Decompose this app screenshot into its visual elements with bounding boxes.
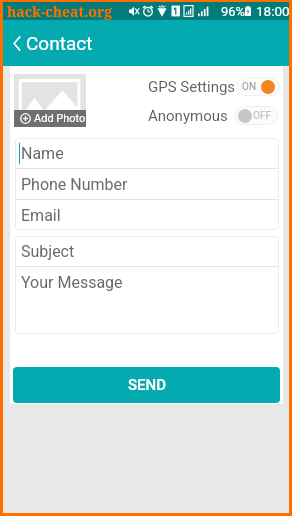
button[interactable]: Anonymous bbox=[148, 106, 228, 125]
staticText: Anonymous bbox=[148, 107, 228, 125]
staticText: SEND bbox=[128, 376, 166, 394]
staticText: Add Photo bbox=[34, 112, 86, 125]
button[interactable]: Add Photo bbox=[14, 74, 86, 127]
staticText: Email bbox=[21, 206, 61, 225]
button[interactable]: GPS Settings bbox=[148, 77, 236, 96]
staticText: 96% bbox=[221, 4, 246, 19]
button[interactable]: Name bbox=[15, 138, 279, 168]
staticText: Phone Number bbox=[21, 175, 128, 194]
other: Battery bbox=[245, 6, 251, 16]
staticText: OFF bbox=[253, 110, 271, 122]
button[interactable]: Back bbox=[3, 20, 103, 66]
button[interactable]: Email bbox=[15, 200, 279, 230]
other: Back bbox=[13, 35, 21, 52]
button[interactable]: Phone Number bbox=[15, 169, 279, 199]
staticText: Name bbox=[21, 144, 64, 163]
staticText: hack-cheat.org bbox=[7, 2, 113, 20]
button[interactable]: Off bbox=[234, 106, 278, 125]
staticText: ON bbox=[242, 81, 257, 93]
staticText: Your Message bbox=[21, 273, 123, 292]
button[interactable]: On bbox=[236, 77, 280, 96]
button[interactable]: Subject bbox=[15, 236, 279, 266]
staticText: GPS Settings bbox=[148, 78, 236, 96]
staticText: Contact bbox=[26, 32, 93, 54]
button[interactable]: Your Message bbox=[15, 267, 279, 334]
staticText: Subject bbox=[21, 242, 75, 261]
button[interactable]: SEND bbox=[13, 367, 280, 403]
staticText: 18:00 bbox=[256, 3, 290, 19]
